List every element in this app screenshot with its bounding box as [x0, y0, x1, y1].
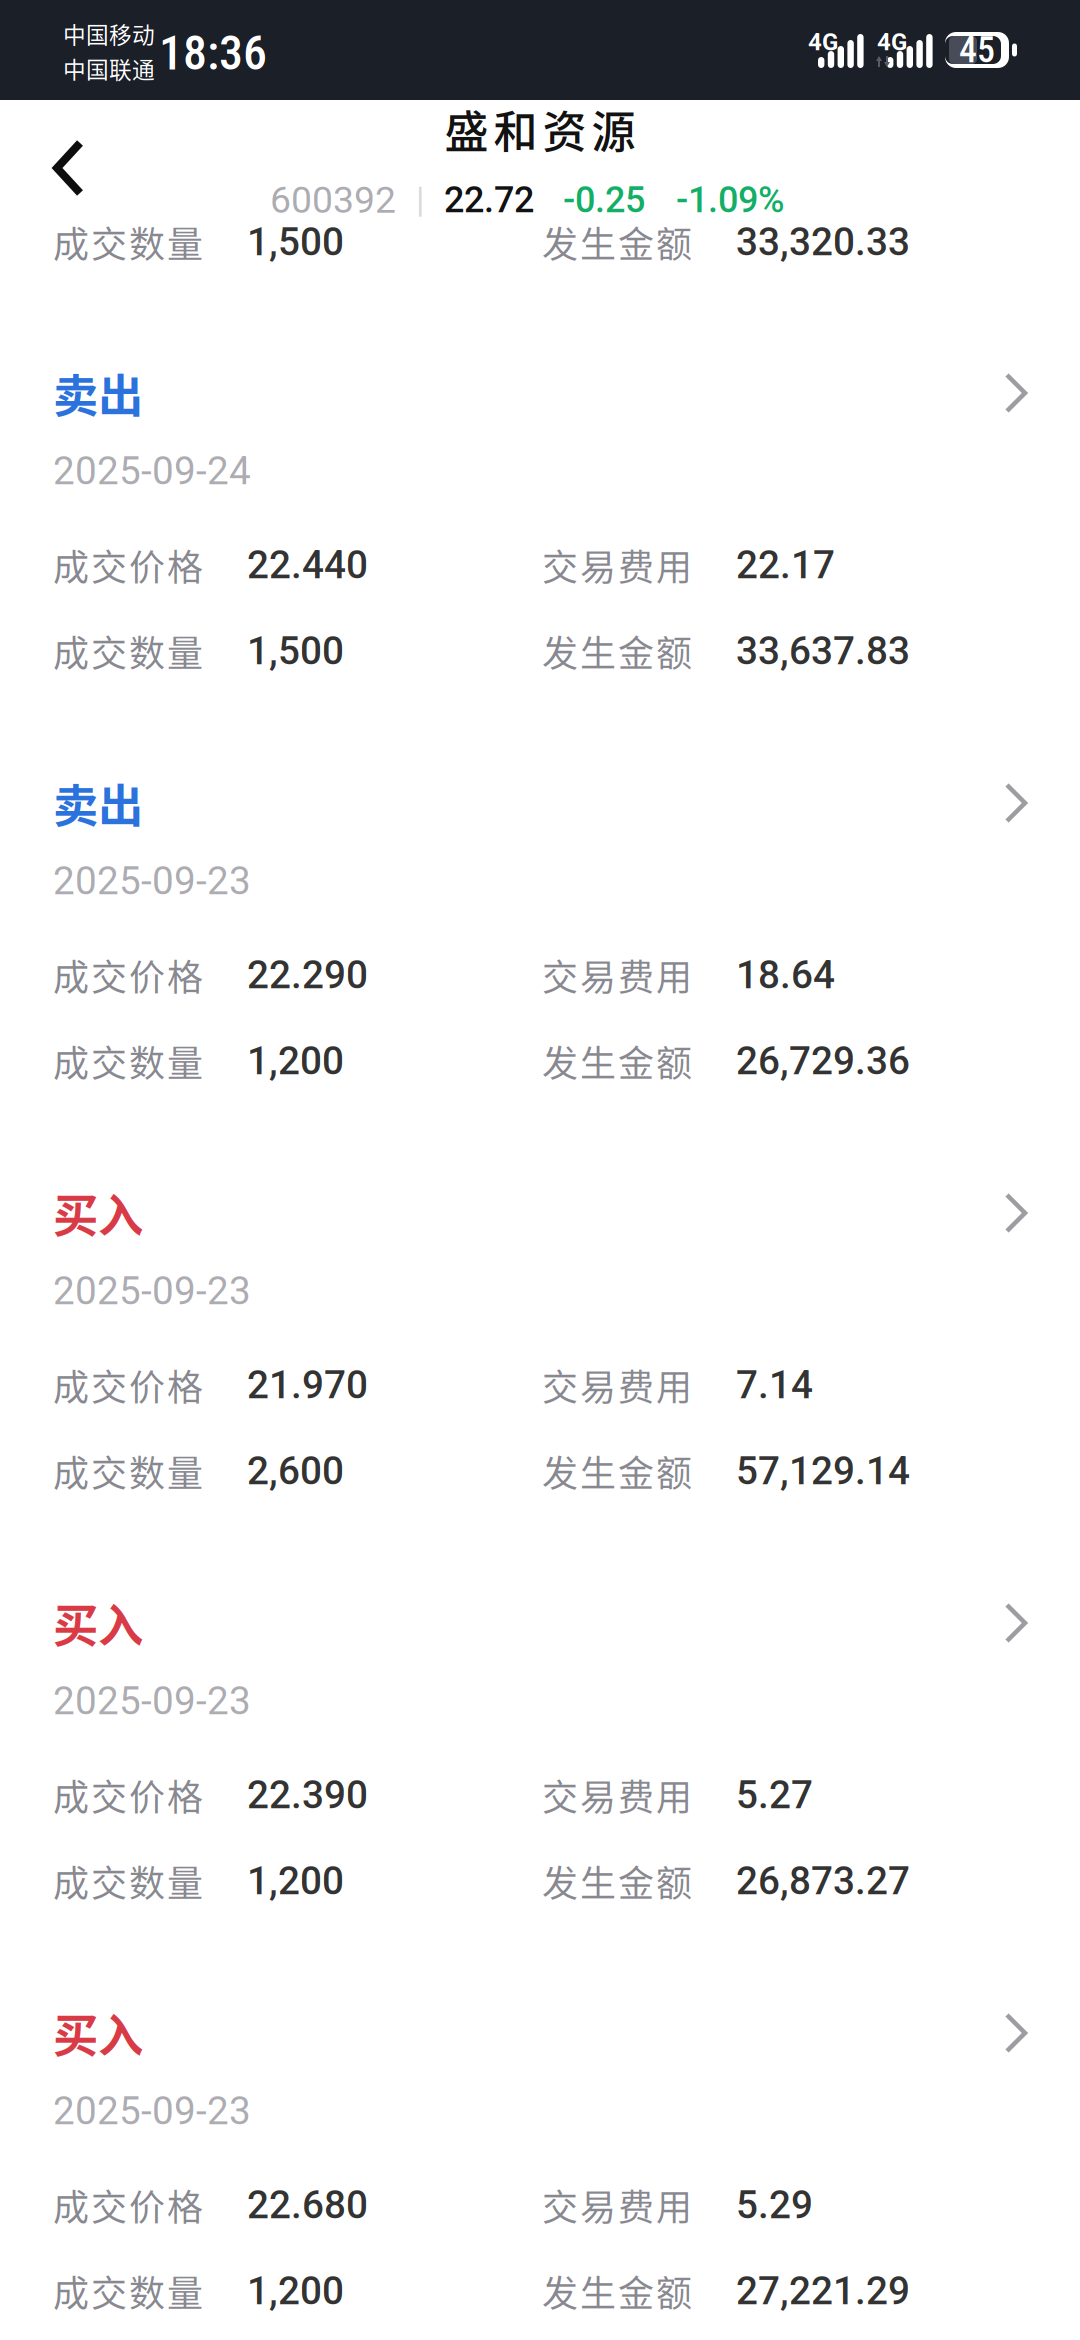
button[interactable]: 卖出: [0, 350, 1080, 760]
staticText: 成交数量: [53, 1035, 203, 1087]
button[interactable]: 卖出: [0, 760, 1080, 1170]
staticText: 发生金额: [542, 625, 692, 677]
staticText: 600392: [270, 178, 396, 222]
staticText: 22.440: [247, 542, 368, 588]
staticText: 21.970: [247, 1362, 368, 1408]
staticText: 买入: [53, 2000, 143, 2066]
staticText: 18.64: [736, 952, 835, 998]
staticText: 交易费用: [542, 539, 692, 591]
staticText: 2,600: [247, 1448, 344, 1494]
staticText: 发生金额: [542, 2265, 692, 2317]
staticText: 2025-09-23: [53, 858, 251, 904]
staticText: 4G: [877, 28, 907, 56]
staticText: 成交价格: [53, 539, 203, 591]
button[interactable]: 买入: [0, 1580, 1080, 1990]
staticText: 5.27: [736, 1772, 813, 1818]
staticText: 交易费用: [542, 1769, 692, 1821]
staticText: 33,637.83: [736, 628, 910, 674]
button[interactable]: Back: [8, 108, 128, 228]
staticText: 26,729.36: [736, 1038, 910, 1084]
staticText: 1,200: [247, 1038, 344, 1084]
staticText: 发生金额: [542, 1445, 692, 1497]
staticText: 盛和资源: [444, 97, 635, 161]
staticText: |: [416, 180, 424, 220]
staticText: 1,500: [247, 628, 344, 674]
staticText: 22.390: [247, 1772, 368, 1818]
staticText: 成交价格: [53, 2179, 203, 2231]
staticText: 22.290: [247, 952, 368, 998]
staticText: 发生金额: [542, 1035, 692, 1087]
button[interactable]: 买入: [0, 1990, 1080, 2340]
staticText: 45: [959, 29, 995, 71]
staticText: 2025-09-23: [53, 2088, 251, 2134]
staticText: 7.14: [736, 1362, 813, 1408]
staticText: 成交价格: [53, 1359, 203, 1411]
staticText: 卖出: [53, 770, 143, 836]
staticText: 22.72: [444, 179, 534, 221]
staticText: 卖出: [53, 360, 143, 426]
staticText: 4G: [808, 28, 838, 56]
staticText: 57,129.14: [736, 1448, 910, 1494]
button[interactable]: 买入: [0, 1170, 1080, 1580]
staticText: 5.29: [736, 2182, 813, 2228]
staticText: 26,873.27: [736, 1858, 910, 1904]
staticText: 成交数量: [53, 1855, 203, 1907]
staticText: 33,320.33: [736, 219, 910, 265]
staticText: 中国联通: [63, 52, 155, 85]
staticText: 2025-09-24: [53, 448, 251, 494]
staticText: 2025-09-23: [53, 1268, 251, 1314]
staticText: 发生金额: [542, 1855, 692, 1907]
staticText: 1,200: [247, 1858, 344, 1904]
staticText: 买入: [53, 1590, 143, 1656]
staticText: 发生金额: [542, 216, 692, 268]
staticText: 交易费用: [542, 949, 692, 1001]
staticText: 22.680: [247, 2182, 368, 2228]
staticText: 27,221.29: [736, 2268, 910, 2314]
staticText: -0.25: [563, 179, 645, 221]
staticText: 交易费用: [542, 1359, 692, 1411]
staticText: 成交数量: [53, 1445, 203, 1497]
staticText: 中国移动: [63, 17, 155, 50]
staticText: 1,500: [247, 219, 344, 265]
staticText: 交易费用: [542, 2179, 692, 2231]
staticText: 22.17: [736, 542, 835, 588]
staticText: 成交数量: [53, 625, 203, 677]
staticText: 成交数量: [53, 216, 203, 268]
staticText: 成交价格: [53, 1769, 203, 1821]
staticText: 18:36: [159, 25, 267, 81]
staticText: 成交价格: [53, 949, 203, 1001]
staticText: -1.09%: [676, 179, 785, 221]
staticText: 1,200: [247, 2268, 344, 2314]
staticText: 成交数量: [53, 2265, 203, 2317]
staticText: 买入: [53, 1180, 143, 1246]
staticText: 2025-09-23: [53, 1678, 251, 1724]
